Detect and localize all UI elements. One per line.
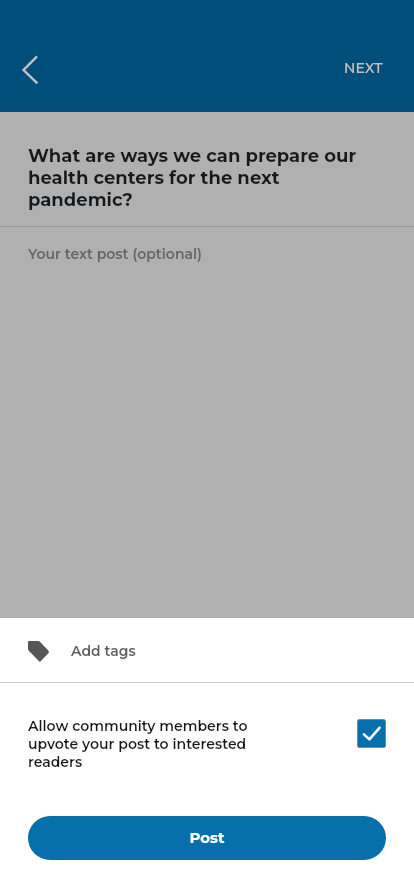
staticText: Allow community members to upvote your p…: [28, 716, 253, 770]
staticText: Your text post (optional): [28, 245, 202, 262]
staticText: Post: [189, 828, 225, 846]
staticText: What are ways we can prepare our health …: [28, 145, 358, 211]
staticText: Add tags: [71, 642, 136, 659]
button[interactable]: Add tags: [0, 618, 414, 682]
staticText: NEXT: [344, 59, 383, 76]
button[interactable]: Allow upvotes checkbox, checked: [358, 720, 385, 747]
button[interactable]: Back: [7, 47, 53, 93]
button[interactable]: NEXT: [330, 47, 397, 88]
button[interactable]: Allow community members to upvote your p…: [0, 702, 414, 776]
button[interactable]: Post: [28, 816, 386, 860]
